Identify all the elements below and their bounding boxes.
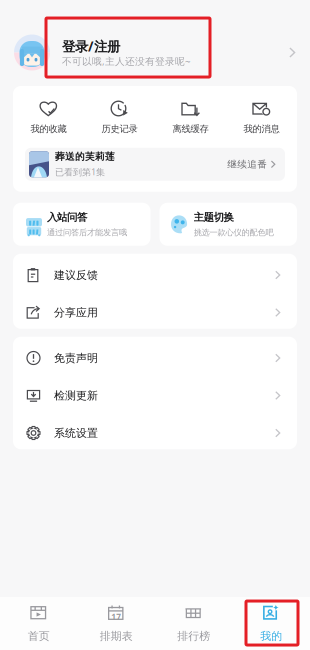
staticText: 我的消息 (243, 123, 279, 135)
button[interactable]: 历史记录 (84, 100, 155, 135)
staticText: 主题切换 (193, 211, 233, 224)
staticText: 登录/注册 (62, 37, 120, 55)
staticText: 排期表 (100, 629, 133, 643)
staticText: 我的收藏 (30, 123, 66, 135)
button[interactable]: 葬送的芙莉莲 (25, 148, 285, 181)
button[interactable]: 登录/注册 (0, 0, 310, 86)
staticText: 已看到第1集 (55, 166, 105, 178)
button[interactable]: 我的 (232, 597, 310, 650)
staticText: 历史记录 (101, 123, 137, 135)
staticText: 系统设置 (54, 426, 98, 440)
staticText: 检测更新 (54, 389, 98, 402)
button[interactable]: 建议反馈 (13, 254, 297, 291)
button[interactable]: 首页 (0, 597, 77, 650)
staticText: 离线缓存 (172, 123, 208, 135)
staticText: 挑选一款心仪的配色吧 (193, 227, 273, 238)
button[interactable]: 17 (77, 597, 155, 650)
button[interactable]: 我的消息 (226, 100, 297, 135)
button[interactable]: 检测更新 (13, 374, 297, 412)
staticText: 葬送的芙莉莲 (55, 150, 115, 163)
staticText: 建议反馈 (54, 268, 98, 282)
staticText: 我的 (260, 629, 282, 643)
staticText: 免责声明 (54, 351, 98, 365)
button[interactable]: 离线缓存 (155, 100, 226, 135)
staticText: 通过问答后才能发言哦 (47, 227, 127, 238)
staticText: 入站问答 (47, 211, 87, 224)
staticText: 首页 (28, 629, 50, 643)
button[interactable]: 我的收藏 (13, 100, 84, 135)
staticText: 17 (111, 611, 121, 622)
staticText: 不可以哦,主人还没有登录呢~ (62, 54, 191, 68)
button[interactable]: 主题切换 (159, 203, 297, 246)
button[interactable]: 分享应用 (13, 291, 297, 329)
button[interactable]: 排行榜 (155, 597, 232, 650)
staticText: 继续追番 (227, 158, 267, 170)
staticText: 排行榜 (177, 629, 210, 643)
button[interactable]: 系统设置 (13, 412, 297, 449)
button[interactable]: 免责声明 (13, 337, 297, 374)
button[interactable]: 入站问答 (13, 203, 150, 246)
staticText: 分享应用 (54, 306, 98, 319)
